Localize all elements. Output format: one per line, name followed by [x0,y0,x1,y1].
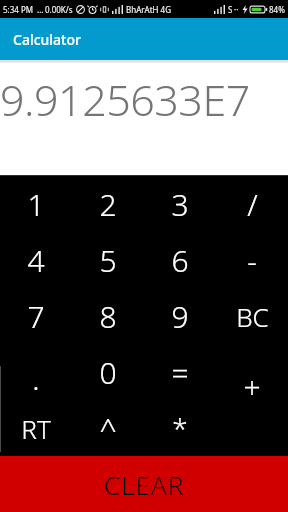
button[interactable]: + [216,344,288,400]
staticText: + [243,366,261,407]
staticText: BhArAtH 4G [126,4,171,15]
staticText: * [172,409,188,447]
staticText: 8 [99,296,117,337]
staticText: 0 [99,352,117,393]
staticText: ^ [99,408,117,449]
staticText: 9 [171,296,189,337]
staticText: 2 [99,184,117,225]
staticText: RT [21,411,51,446]
button[interactable]: 0 [72,344,144,400]
staticText: S [228,4,233,15]
staticText: 4 [27,240,45,281]
button[interactable]: 7 [0,288,72,344]
staticText: 0.00K/s [45,4,73,15]
staticText: 1 [27,184,45,225]
button[interactable]: / [216,176,288,232]
button[interactable]: 2 [72,176,144,232]
staticText: 7 [27,296,45,337]
button[interactable]: * [144,400,216,456]
staticText: ... [37,4,44,15]
button[interactable]: = [144,344,216,400]
staticText: - [247,240,257,281]
staticText: 6 [171,240,189,281]
button[interactable]: 8 [72,288,144,344]
staticText: 9.9125633E7 [0,70,288,129]
button[interactable]: 3 [144,176,216,232]
button[interactable]: 5 [72,232,144,288]
button[interactable]: 4 [0,232,72,288]
staticText: ·· [234,4,239,15]
staticText: BC [236,299,269,334]
staticText: CLEAR [104,467,185,502]
staticText: 5:34 PM [3,4,34,15]
button[interactable]: 6 [144,232,216,288]
button[interactable]: Calculator [0,18,288,60]
staticText: = [171,352,189,393]
staticText: 3 [171,184,189,225]
staticText: 5 [99,240,117,281]
button[interactable]: 9 [144,288,216,344]
button[interactable]: 1 [0,176,72,232]
staticText: 84% [269,4,285,15]
button[interactable]: RT [0,400,72,456]
button[interactable]: CLEAR [0,456,288,512]
staticText: Calculator [13,30,81,49]
staticText: . [32,358,40,399]
button[interactable]: ^ [72,400,144,456]
button[interactable]: - [216,232,288,288]
button[interactable]: . [0,344,72,400]
button[interactable]: BC [216,288,288,344]
staticText: / [247,184,258,225]
